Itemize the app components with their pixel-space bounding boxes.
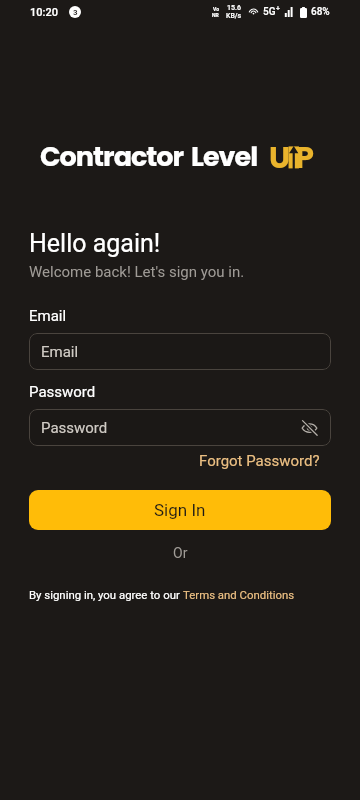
staticText: Hello again! — [29, 229, 161, 258]
staticText: Terms and Conditions — [183, 588, 295, 601]
staticText: By signing in, you agree to our — [29, 588, 183, 601]
staticText: Forgot Password? — [199, 452, 320, 470]
button[interactable]: Sign In — [29, 490, 331, 530]
staticText: KB/s — [226, 12, 242, 20]
button[interactable]: Forgot Password? — [199, 452, 331, 470]
staticText: Email — [41, 343, 79, 361]
button[interactable]: Terms and Conditions — [183, 588, 295, 601]
staticText: Level — [191, 138, 258, 176]
staticText: Sign In — [154, 500, 206, 520]
staticText: Contractor — [40, 138, 184, 176]
staticText: Welcome back! Let's sign you in. — [29, 263, 245, 281]
staticText: Or — [173, 545, 188, 561]
staticText: 10:20 — [30, 6, 58, 19]
staticText: Vo — [213, 6, 219, 12]
staticText: Email — [29, 307, 67, 325]
staticText: 68% — [311, 6, 330, 18]
button[interactable]: Email — [29, 333, 331, 370]
staticText: 15.6 — [227, 4, 241, 12]
staticText: UP — [269, 137, 320, 177]
other: Show password — [301, 420, 318, 435]
staticText: 5G — [263, 6, 276, 18]
staticText: 3 — [73, 8, 78, 17]
staticText: NR — [212, 12, 219, 18]
staticText: Password — [41, 419, 108, 437]
staticText: Password — [29, 383, 96, 401]
button[interactable]: Password — [29, 409, 331, 446]
staticText: + — [276, 5, 280, 13]
